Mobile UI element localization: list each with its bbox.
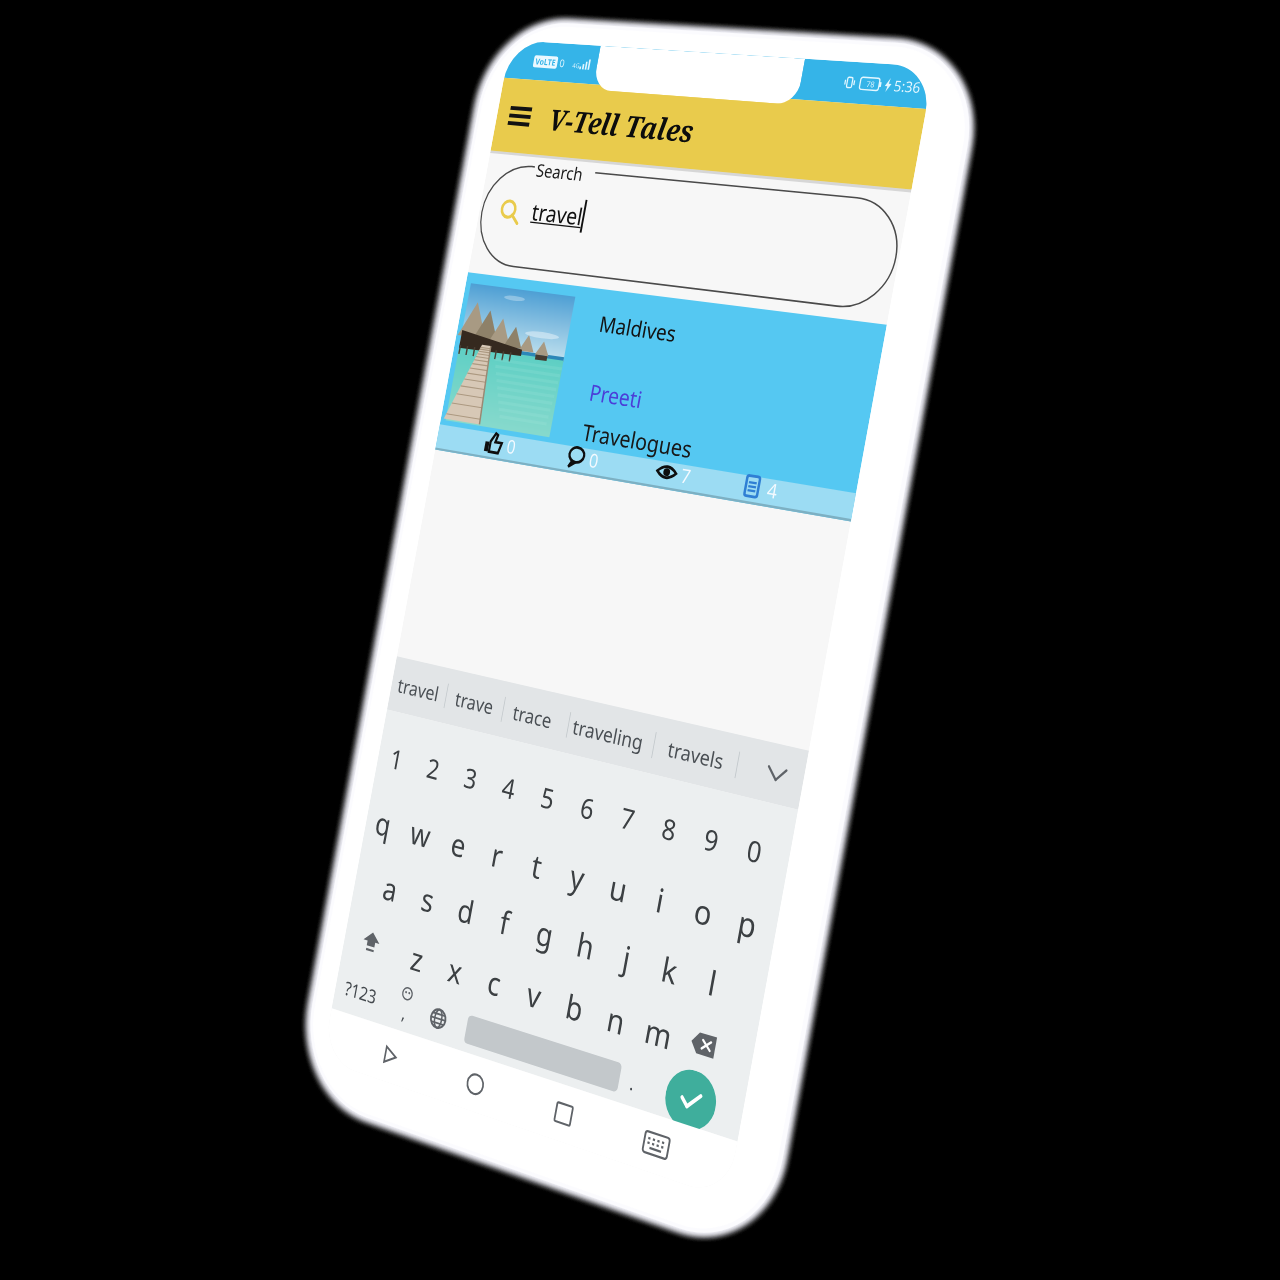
staticText: Maldives [381,583,581,648]
button[interactable]: Maldives [0,540,1080,951]
staticText: Travelogues [389,823,673,891]
button[interactable]: 4 [811,886,898,942]
staticText: 7 [658,886,683,942]
staticText: V-Tell Tales [146,128,531,218]
staticText: 0 [419,886,444,942]
button[interactable]: Search [6,283,1074,516]
button[interactable]: 0 [357,886,444,942]
staticText: Preeti [388,734,526,802]
button[interactable]: 7 [596,886,683,942]
staticText: 78 [931,33,951,56]
